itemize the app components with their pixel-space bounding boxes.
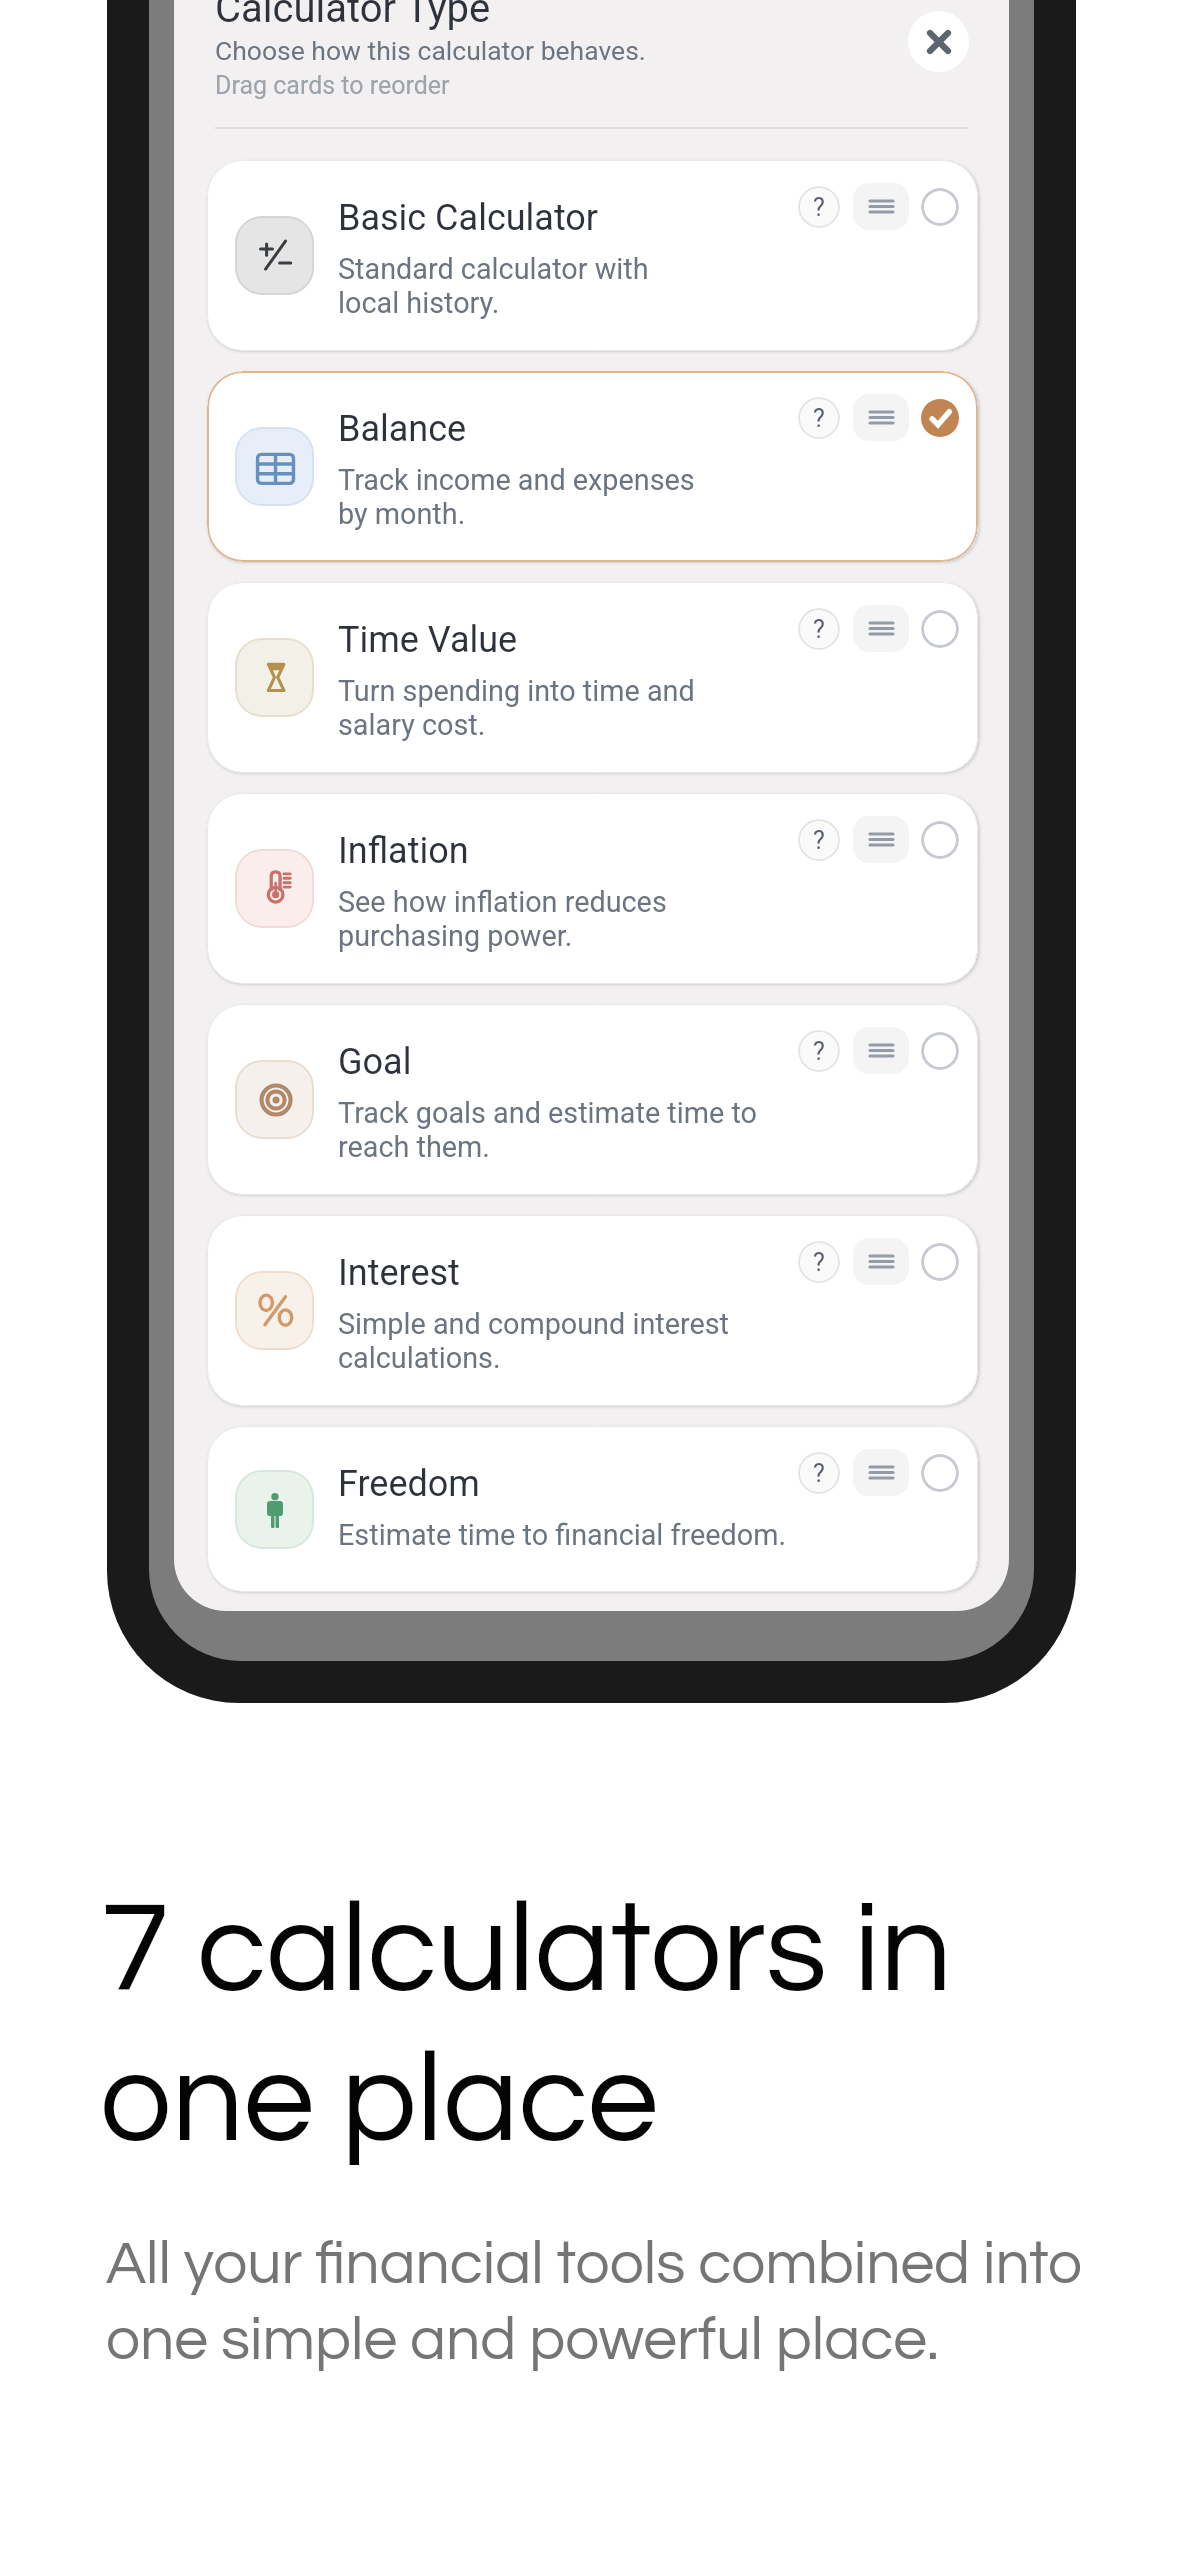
button[interactable]: Select [921,188,959,226]
staticText: ? [813,615,825,644]
staticText: ? [813,1459,825,1488]
staticText: See how inflation reduces purchasing pow… [338,885,667,953]
button[interactable]: Help [798,1030,840,1072]
staticText: ? [813,404,825,433]
button[interactable]: Help [798,819,840,861]
staticText: Track income and expenses by month. [338,463,695,531]
staticText: ? [813,1037,825,1066]
staticText: All your financial tools combined into o… [106,2233,1083,2371]
staticText: Freedom [338,1463,480,1505]
button[interactable]: Balance [207,371,978,562]
staticText: Time Value [338,619,518,661]
button[interactable]: Drag handle [853,1238,909,1285]
button[interactable]: Select [921,821,959,859]
button[interactable]: Select [921,1454,959,1492]
button[interactable]: Interest [207,1215,978,1406]
staticText: Simple and compound interest calculation… [338,1307,730,1375]
button[interactable]: Select [921,1243,959,1281]
staticText: Interest [338,1252,460,1294]
button[interactable]: Help [798,1452,840,1494]
staticText: Goal [338,1041,412,1083]
button[interactable]: Inflation [207,793,978,984]
button[interactable]: Help [798,608,840,650]
staticText: 7 calculators in one place [100,1886,952,2167]
button[interactable]: Select [921,610,959,648]
button[interactable]: Help [798,1241,840,1283]
button[interactable]: Basic Calculator [207,160,978,351]
staticText: Inflation [338,830,469,872]
button[interactable]: Time Value [207,582,978,773]
button[interactable]: Drag handle [853,605,909,652]
staticText: ? [813,826,825,855]
staticText: Turn spending into time and salary cost. [338,674,695,742]
button[interactable]: Freedom [207,1426,978,1592]
staticText: Balance [338,408,467,450]
button[interactable]: Drag handle [853,394,909,441]
button[interactable]: Select [921,1032,959,1070]
button[interactable]: Goal [207,1004,978,1195]
button[interactable]: Close [908,11,969,72]
button[interactable]: Drag handle [853,1027,909,1074]
staticText: ? [813,193,825,222]
staticText: Calculator Type [215,0,491,32]
staticText: Choose how this calculator behaves. [215,35,646,66]
staticText: ? [813,1248,825,1277]
button[interactable]: Drag handle [853,816,909,863]
staticText: Estimate time to financial freedom. [338,1518,787,1552]
staticText: Track goals and estimate time to reach t… [338,1096,757,1164]
button[interactable]: Help [798,397,840,439]
button[interactable]: Help [798,186,840,228]
button[interactable]: Drag handle [853,1449,909,1496]
button[interactable]: Selected [921,399,959,437]
staticText: Basic Calculator [338,197,599,239]
staticText: Standard calculator with local history. [338,252,649,320]
button[interactable]: Drag handle [853,183,909,230]
staticText: Drag cards to reorder [215,71,450,100]
